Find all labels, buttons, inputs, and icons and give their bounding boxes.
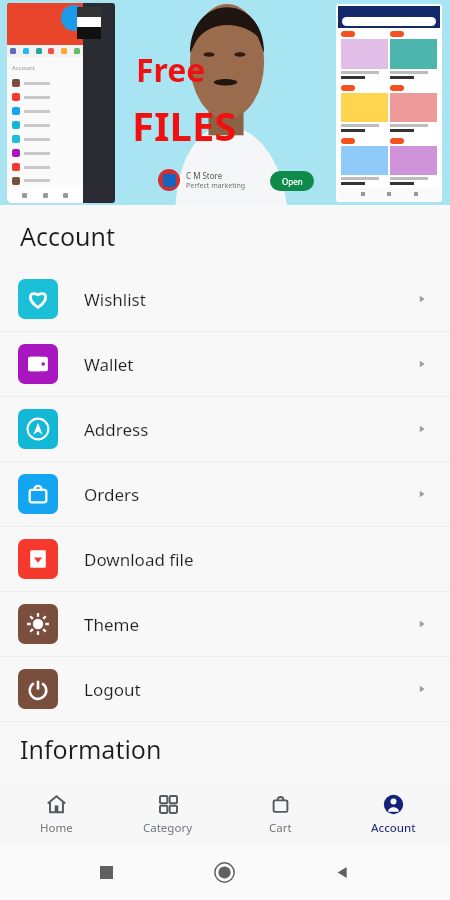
staticText: FILES: [132, 98, 237, 152]
staticText: Download file: [84, 548, 194, 571]
button[interactable]: Home: [0, 783, 112, 845]
button[interactable]: Download file: [0, 527, 450, 591]
staticText: Orders: [84, 483, 140, 506]
staticText: Wishlist: [84, 288, 146, 311]
button[interactable]: Logout: [0, 657, 450, 721]
button[interactable]: Account: [337, 783, 450, 845]
button[interactable]: Address: [0, 397, 450, 461]
staticText: Account: [371, 820, 416, 836]
button[interactable]: Theme: [0, 592, 450, 656]
staticText: Logout: [84, 678, 141, 701]
staticText: Wallet: [84, 353, 134, 376]
staticText: Account: [12, 64, 35, 72]
staticText: C M Store: [186, 170, 223, 181]
button[interactable]: Category: [112, 783, 224, 845]
staticText: Category: [143, 820, 193, 836]
staticText: Theme: [84, 613, 140, 636]
staticText: Open: [282, 176, 303, 187]
staticText: Perfect marketing: [186, 181, 246, 191]
button[interactable]: Wishlist: [0, 267, 450, 331]
button[interactable]: Back: [335, 865, 350, 880]
staticText: Free: [136, 48, 206, 92]
staticText: Home: [40, 820, 73, 836]
staticText: Account: [20, 219, 116, 253]
button[interactable]: Orders: [0, 462, 450, 526]
staticText: Address: [84, 418, 149, 441]
staticText: Information: [20, 732, 162, 766]
button[interactable]: Open: [270, 171, 314, 191]
button[interactable]: Home: [214, 862, 235, 883]
button[interactable]: Wallet: [0, 332, 450, 396]
staticText: Cart: [269, 820, 292, 836]
button[interactable]: Cart: [224, 783, 337, 845]
